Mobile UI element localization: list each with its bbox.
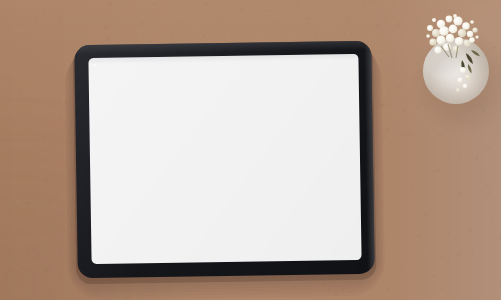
- other: Flower vase decoration: [0, 0, 501, 300]
- button[interactable]: Tablet screen: [0, 0, 501, 300]
